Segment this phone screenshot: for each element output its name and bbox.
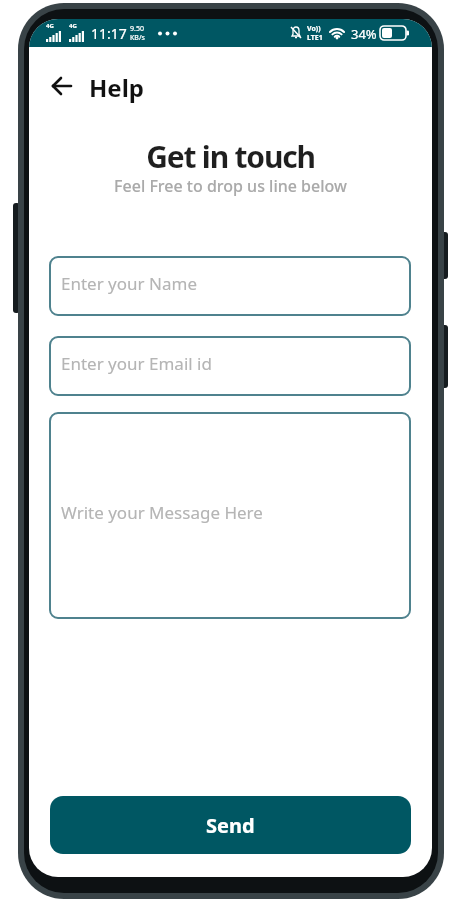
staticText: Enter your Email id [61, 352, 212, 375]
staticText: 4G [69, 22, 77, 30]
staticText: Vo)) LTE1 [307, 24, 323, 42]
staticText: Write your Message Here [61, 501, 263, 524]
button[interactable]: Send [50, 796, 411, 854]
button[interactable] [43, 72, 83, 102]
button[interactable]: Enter your Email id [49, 336, 411, 396]
staticText: 11:17 [91, 24, 127, 43]
staticText: Enter your Name [61, 272, 197, 295]
staticText: 9.50 KB/s [130, 24, 145, 42]
staticText: Help [89, 71, 145, 104]
staticText: Get in touch [29, 136, 432, 177]
button[interactable]: Enter your Name [49, 256, 411, 316]
staticText: 34% [351, 25, 377, 43]
staticText: Send [206, 812, 255, 839]
staticText: Feel Free to drop us line below [29, 175, 432, 197]
button[interactable]: Write your Message Here [49, 412, 411, 619]
staticText: 4G [46, 22, 54, 30]
